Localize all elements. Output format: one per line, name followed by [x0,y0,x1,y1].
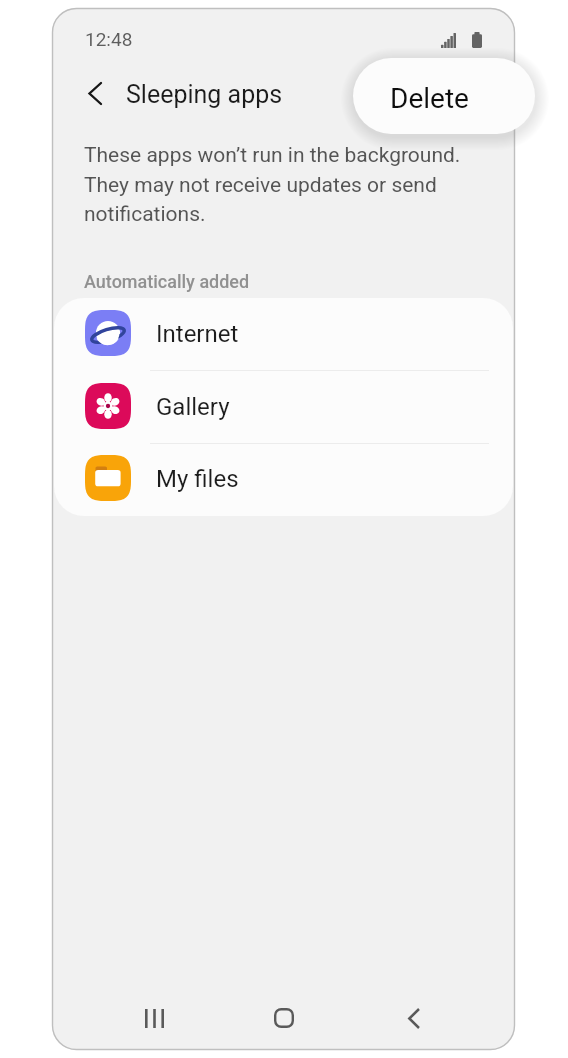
button[interactable]: Delete [353,58,535,134]
staticText: My files [156,465,239,493]
button[interactable]: Navigate up [71,70,117,116]
staticText: Sleeping apps [126,80,283,109]
button[interactable]: Back [390,994,438,1042]
staticText: Delete [390,82,469,115]
staticText: Gallery [156,393,230,421]
staticText: 12:48 [85,28,133,50]
button[interactable]: Home [260,994,308,1042]
button[interactable]: Gallery [54,371,513,444]
button[interactable]: Internet [54,298,513,371]
staticText: Automatically added [84,271,250,292]
staticText: These apps won’t run in the background. … [84,143,496,226]
staticText: Internet [156,320,239,348]
button[interactable]: Recent apps [130,994,178,1042]
button[interactable]: My files [54,444,513,516]
